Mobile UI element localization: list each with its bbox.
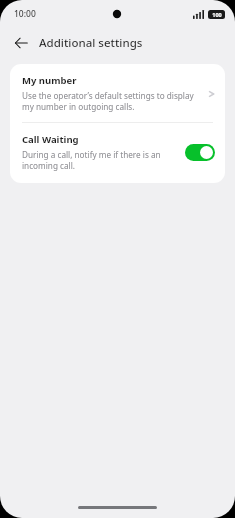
button[interactable]: Call Waiting toggle: [185, 144, 215, 161]
staticText: Use the operator’s default settings to d…: [22, 90, 202, 113]
staticText: My number: [22, 74, 77, 87]
staticText: Call Waiting: [22, 133, 79, 146]
button[interactable]: Call Waiting: [10, 123, 225, 183]
staticText: 100: [212, 11, 222, 18]
staticText: Additional settings: [39, 35, 143, 51]
staticText: During a call, notify me if there is an …: [22, 149, 179, 172]
staticText: 10:00: [14, 8, 36, 20]
button[interactable]: My number: [10, 64, 225, 122]
button[interactable]: Back: [8, 30, 34, 56]
